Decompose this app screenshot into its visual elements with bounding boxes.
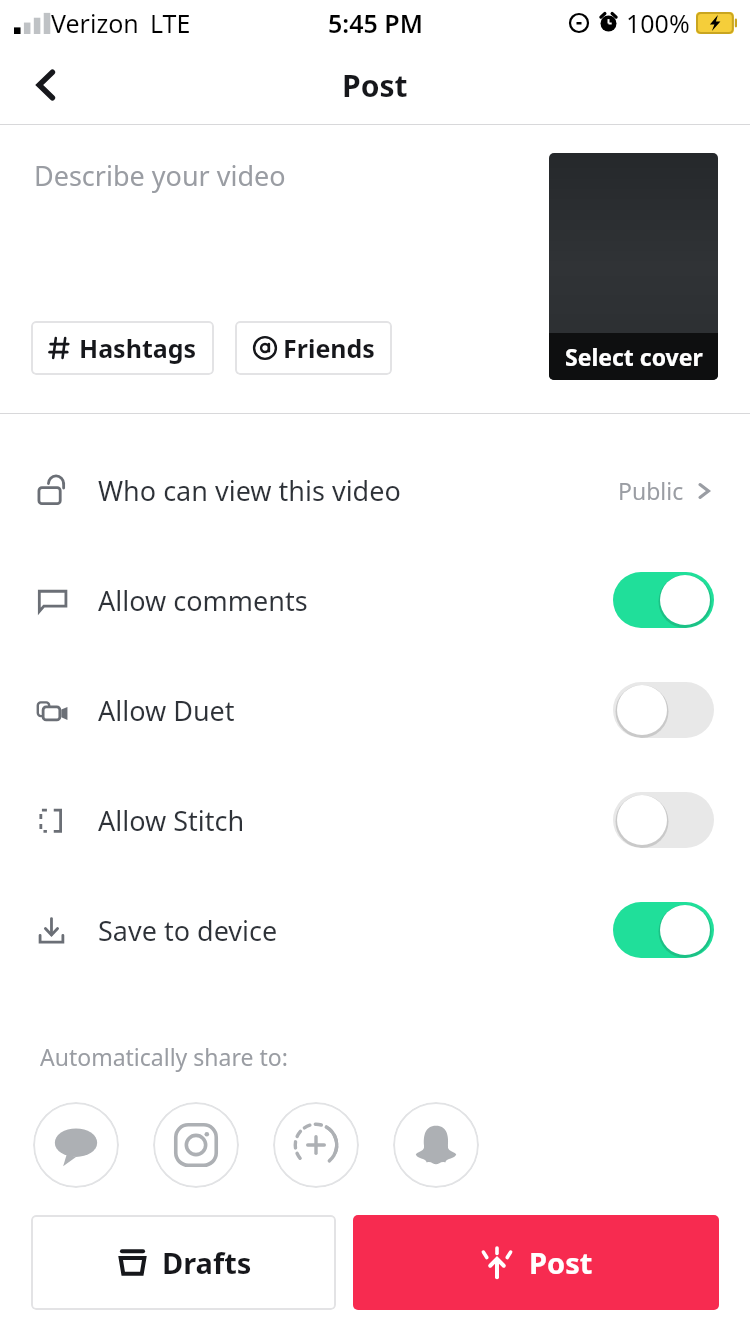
staticText: Allow Stitch (98, 802, 245, 839)
button[interactable]: Post (353, 1215, 719, 1310)
staticText: Verizon (51, 6, 139, 40)
staticText: Allow Duet (98, 692, 235, 729)
staticText: Save to device (98, 912, 278, 949)
button[interactable]: Back (18, 57, 74, 113)
staticText: Automatically share to: (40, 1041, 288, 1072)
button[interactable]: Drafts (31, 1215, 336, 1310)
staticText: 5:45 PM (328, 6, 423, 40)
button[interactable]: Describe your video (34, 157, 286, 194)
button[interactable]: Allow Stitch (0, 765, 750, 875)
staticText: Post (342, 65, 408, 106)
button[interactable]: Friends (235, 321, 392, 375)
button[interactable]: Who can view this video (0, 435, 750, 545)
staticText: 100% (626, 6, 690, 40)
button[interactable]: Share to Instagram Story (273, 1102, 359, 1188)
button[interactable]: Select cover (549, 153, 718, 380)
staticText: Friends (283, 331, 375, 365)
button[interactable]: Toggle on (613, 902, 714, 958)
button[interactable]: Toggle on (613, 572, 714, 628)
button[interactable]: Toggle off (613, 792, 714, 848)
staticText: Hashtags (79, 331, 197, 365)
staticText: Post (529, 1243, 593, 1282)
button[interactable]: Allow comments (0, 545, 750, 655)
button[interactable]: Hashtags (31, 321, 214, 375)
button[interactable]: Share to Snapchat (393, 1102, 479, 1188)
staticText: Public (618, 475, 684, 506)
button[interactable]: Share to Instagram (153, 1102, 239, 1188)
staticText: Allow comments (98, 582, 308, 619)
staticText: Select cover (565, 341, 703, 372)
staticText: Drafts (162, 1243, 252, 1282)
button[interactable]: Toggle off (613, 682, 714, 738)
button[interactable]: Save to device (0, 875, 750, 985)
staticText: Who can view this video (98, 472, 401, 509)
button[interactable]: Share to Messages (33, 1102, 119, 1188)
button[interactable]: Allow Duet (0, 655, 750, 765)
staticText: LTE (150, 6, 191, 40)
